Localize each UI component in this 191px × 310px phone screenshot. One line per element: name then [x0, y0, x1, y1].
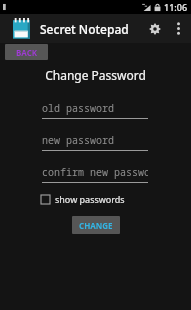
staticText: Secret Notepad: [40, 21, 142, 37]
button[interactable]: Settings: [142, 14, 168, 43]
button[interactable]: show passwords: [41, 191, 125, 207]
staticText: show passwords: [55, 193, 125, 205]
button[interactable]: CHANGE: [72, 216, 120, 234]
button[interactable]: confirm new password: [42, 165, 148, 183]
staticText: 11:06: [164, 1, 188, 13]
staticText: old password: [42, 101, 114, 115]
staticText: confirm new password: [42, 165, 148, 179]
staticText: BACK: [16, 47, 38, 58]
button[interactable]: old password: [42, 101, 148, 119]
button[interactable]: More options: [168, 14, 188, 43]
staticText: CHANGE: [79, 220, 113, 231]
button[interactable]: BACK: [5, 44, 48, 60]
staticText: new password: [42, 133, 114, 147]
button[interactable]: new password: [42, 133, 148, 151]
staticText: Change Password: [0, 67, 191, 83]
